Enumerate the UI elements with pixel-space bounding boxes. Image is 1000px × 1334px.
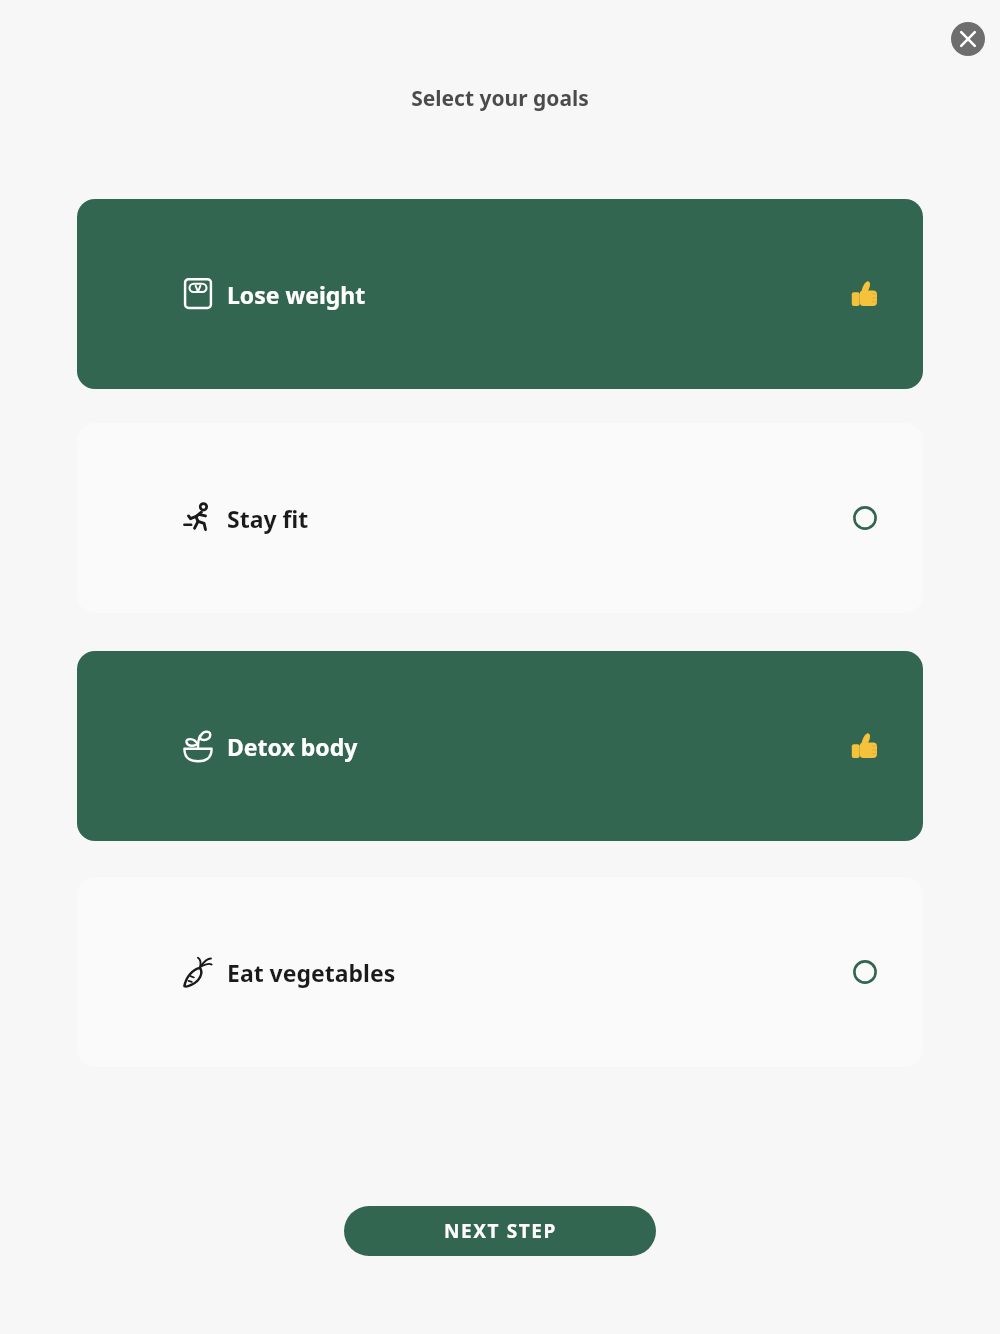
button[interactable]: Close (951, 22, 985, 56)
button[interactable]: Detox body (77, 651, 923, 841)
staticText: Eat vegetables (227, 957, 396, 988)
button[interactable]: NEXT STEP (344, 1206, 656, 1256)
staticText: Select your goals (411, 84, 589, 113)
staticText: Lose weight (227, 279, 366, 310)
staticText: Detox body (227, 731, 358, 762)
staticText: Stay fit (227, 503, 309, 534)
button[interactable]: Eat vegetables (77, 877, 923, 1067)
staticText: NEXT STEP (444, 1218, 557, 1244)
button[interactable]: Stay fit (77, 423, 923, 613)
button[interactable]: Lose weight (77, 199, 923, 389)
